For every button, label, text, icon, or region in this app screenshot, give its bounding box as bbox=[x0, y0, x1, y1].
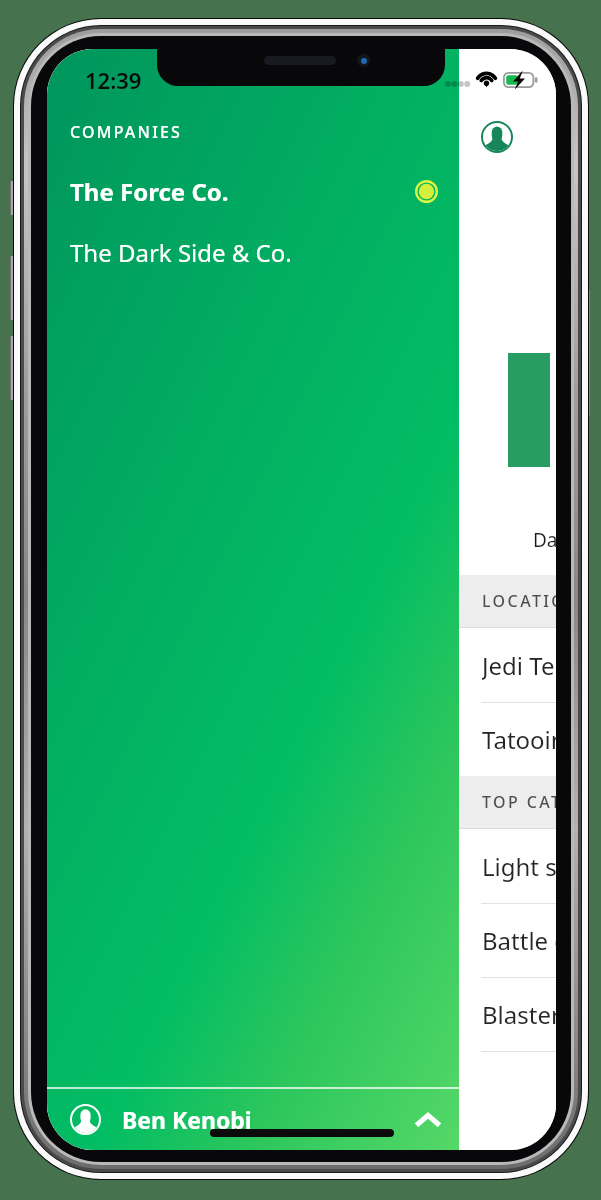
staticText: TOP CATEGORIES bbox=[482, 791, 556, 813]
staticText: The Dark Side & Co. bbox=[70, 236, 292, 269]
button[interactable]: The Force Co. bbox=[47, 168, 459, 214]
button[interactable]: Jedi Temple bbox=[47, 628, 556, 702]
staticText: 12:39 bbox=[85, 65, 142, 95]
staticText: The Force Co. bbox=[70, 175, 229, 208]
button[interactable]: Ben Kenobi bbox=[47, 1089, 459, 1150]
button[interactable]: Account bbox=[481, 121, 513, 153]
staticText: Tatooine bbox=[482, 723, 556, 756]
staticText: Light sabers bbox=[482, 850, 556, 883]
button[interactable]: Battle droids bbox=[47, 904, 556, 977]
other: Expand bbox=[415, 1107, 441, 1133]
staticText: COMPANIES bbox=[70, 121, 183, 143]
staticText: Jedi Temple bbox=[482, 649, 556, 682]
staticText: Ben Kenobi bbox=[122, 1104, 252, 1135]
staticText: LOCATIONS bbox=[482, 590, 556, 612]
button[interactable]: Light sabers bbox=[47, 829, 556, 903]
button[interactable]: Tatooine bbox=[47, 703, 556, 776]
staticText: Blasters bbox=[482, 998, 556, 1031]
button[interactable]: The Dark Side & Co. bbox=[47, 229, 459, 275]
staticText: Battle droids bbox=[482, 924, 556, 957]
staticText: Dark side bbox=[533, 527, 556, 553]
button[interactable]: Blasters bbox=[47, 978, 556, 1051]
